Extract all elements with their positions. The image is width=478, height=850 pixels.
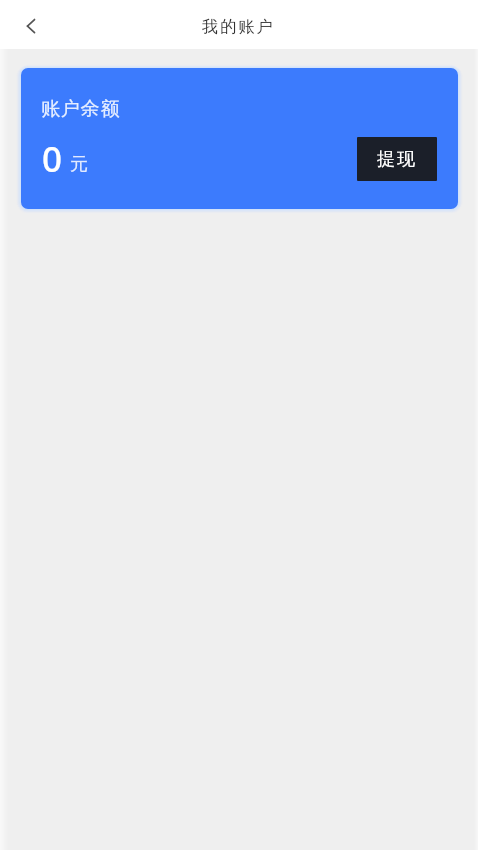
staticText: 我的账户	[202, 17, 275, 37]
button[interactable]: Back	[11, 6, 51, 46]
button[interactable]: 提现	[357, 137, 437, 181]
staticText: 元	[70, 153, 88, 176]
staticText: 账户余额	[41, 97, 121, 121]
staticText: 0	[42, 135, 63, 183]
staticText: 提现	[376, 148, 416, 171]
